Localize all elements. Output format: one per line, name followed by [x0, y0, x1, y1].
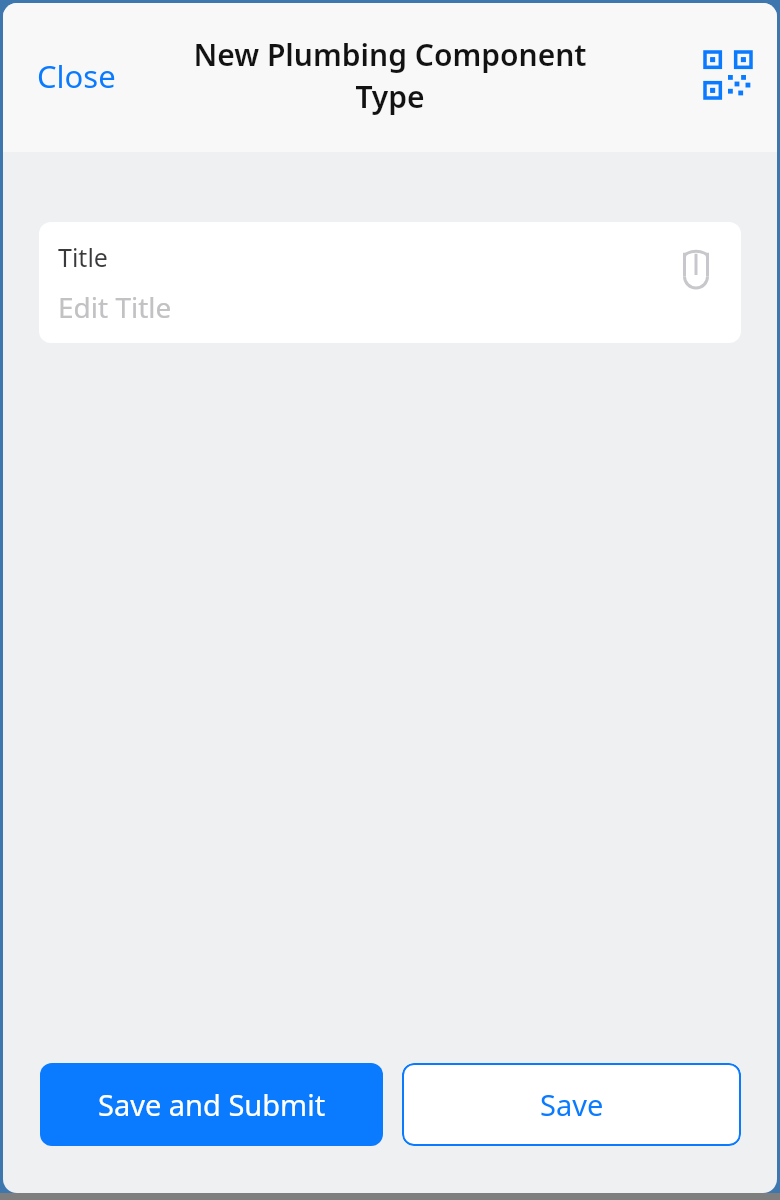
- button[interactable]: Save: [402, 1063, 741, 1146]
- staticText: Close: [37, 55, 116, 97]
- button[interactable]: Scan QR code: [698, 45, 758, 105]
- staticText: Title: [58, 240, 108, 274]
- button[interactable]: Title: [39, 222, 741, 343]
- button[interactable]: Save and Submit: [40, 1063, 383, 1146]
- staticText: Save and Submit: [98, 1085, 326, 1124]
- staticText: Edit Title: [58, 288, 172, 326]
- staticText: Save: [540, 1085, 604, 1124]
- staticText: New Plumbing Component Type: [160, 34, 620, 117]
- button[interactable]: Close: [3, 45, 150, 107]
- button[interactable]: Attach file: [671, 244, 721, 294]
